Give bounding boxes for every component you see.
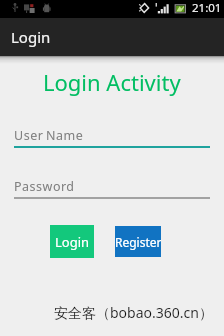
button[interactable]	[14, 171, 210, 201]
staticText: Register	[115, 234, 161, 250]
staticText: Login	[55, 233, 90, 251]
button[interactable]: Login	[50, 225, 94, 258]
button[interactable]	[14, 120, 210, 150]
staticText: User Name	[14, 127, 84, 144]
other: Notifications	[11, 2, 51, 14]
staticText: 安全客（bobao.360.cn）	[54, 303, 213, 322]
other: Signal and battery status	[138, 0, 188, 18]
button[interactable]: Login	[0, 18, 224, 56]
staticText: Login	[11, 27, 51, 47]
staticText: Password	[14, 178, 75, 195]
staticText: Login Activity	[43, 67, 181, 97]
button[interactable]: Register	[115, 226, 161, 257]
staticText: 21:01	[192, 0, 222, 16]
